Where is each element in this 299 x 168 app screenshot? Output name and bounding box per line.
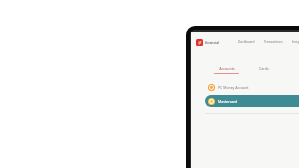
button[interactable]: Dashboard [237, 39, 256, 45]
button[interactable]: Insights [291, 39, 299, 45]
staticText: Accounts [219, 66, 235, 71]
button[interactable]: Cards [258, 66, 270, 71]
staticText: Transactions [264, 40, 283, 44]
button[interactable]: Accounts [213, 66, 240, 74]
button[interactable]: PC Money Account [205, 81, 299, 93]
staticText: PC Money Account [218, 85, 249, 90]
button[interactable]: Brand logo [196, 39, 203, 46]
button[interactable]: Transactions [263, 39, 284, 45]
staticText: Insights [292, 40, 299, 44]
staticText: Dashboard [238, 40, 255, 44]
button[interactable]: Mastercard [205, 95, 299, 107]
staticText: Mastercard [218, 99, 237, 104]
staticText: financial [205, 40, 220, 45]
staticText: Cards [259, 66, 269, 71]
